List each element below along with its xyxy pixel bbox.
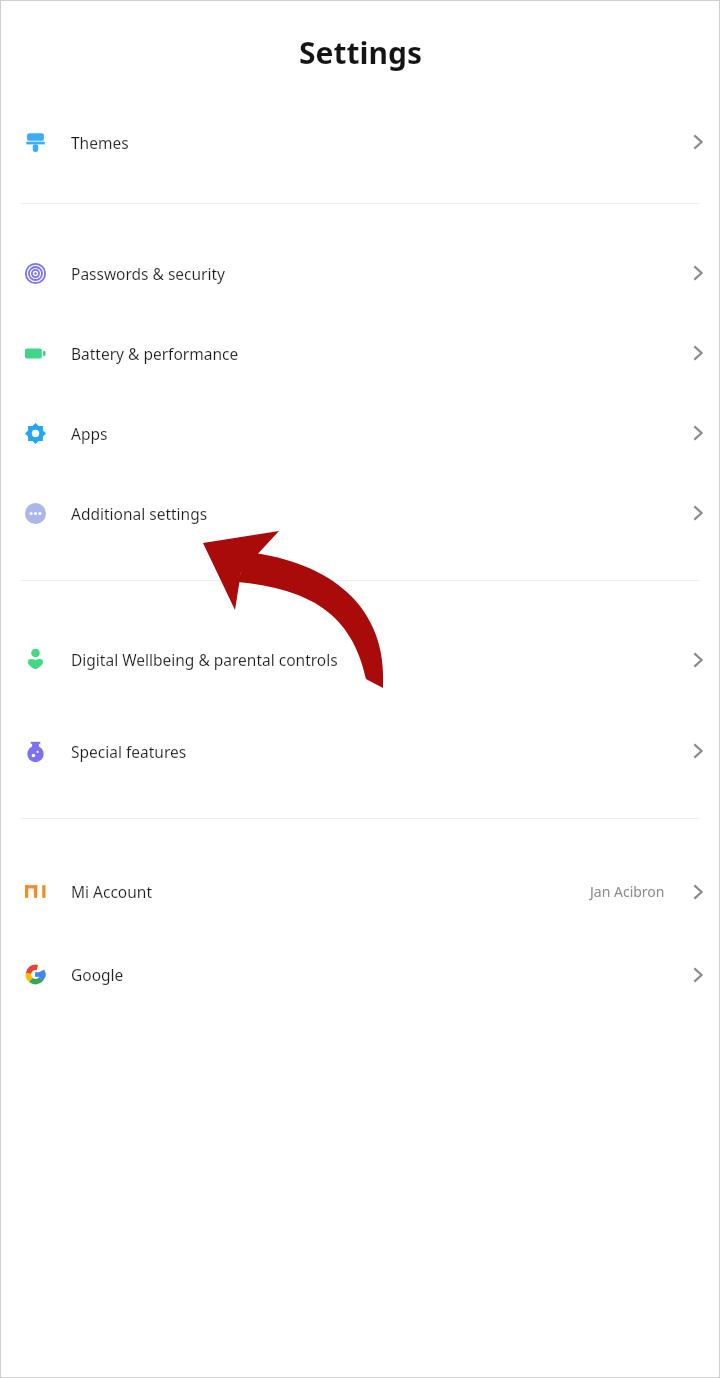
staticText: Themes: [71, 132, 668, 153]
button[interactable]: Digital Wellbeing & parental controls: [0, 611, 720, 708]
button[interactable]: Mi Account: [0, 850, 720, 933]
staticText: Special features: [71, 741, 668, 762]
staticText: Jan Acibron: [590, 882, 665, 901]
button[interactable]: Passwords & security: [0, 233, 720, 313]
staticText: Additional settings: [71, 503, 668, 524]
button[interactable]: Themes: [0, 104, 720, 180]
button[interactable]: Apps: [0, 393, 720, 473]
button[interactable]: Battery & performance: [0, 313, 720, 393]
staticText: Mi Account: [71, 881, 582, 902]
button[interactable]: Additional settings: [0, 473, 720, 553]
staticText: Settings: [299, 32, 422, 73]
button[interactable]: Special features: [0, 708, 720, 794]
staticText: Battery & performance: [71, 343, 668, 364]
staticText: Digital Wellbeing & parental controls: [71, 649, 668, 670]
button[interactable]: Google: [0, 933, 720, 1016]
staticText: Apps: [71, 423, 668, 444]
staticText: Passwords & security: [71, 263, 668, 284]
staticText: Google: [71, 964, 668, 985]
